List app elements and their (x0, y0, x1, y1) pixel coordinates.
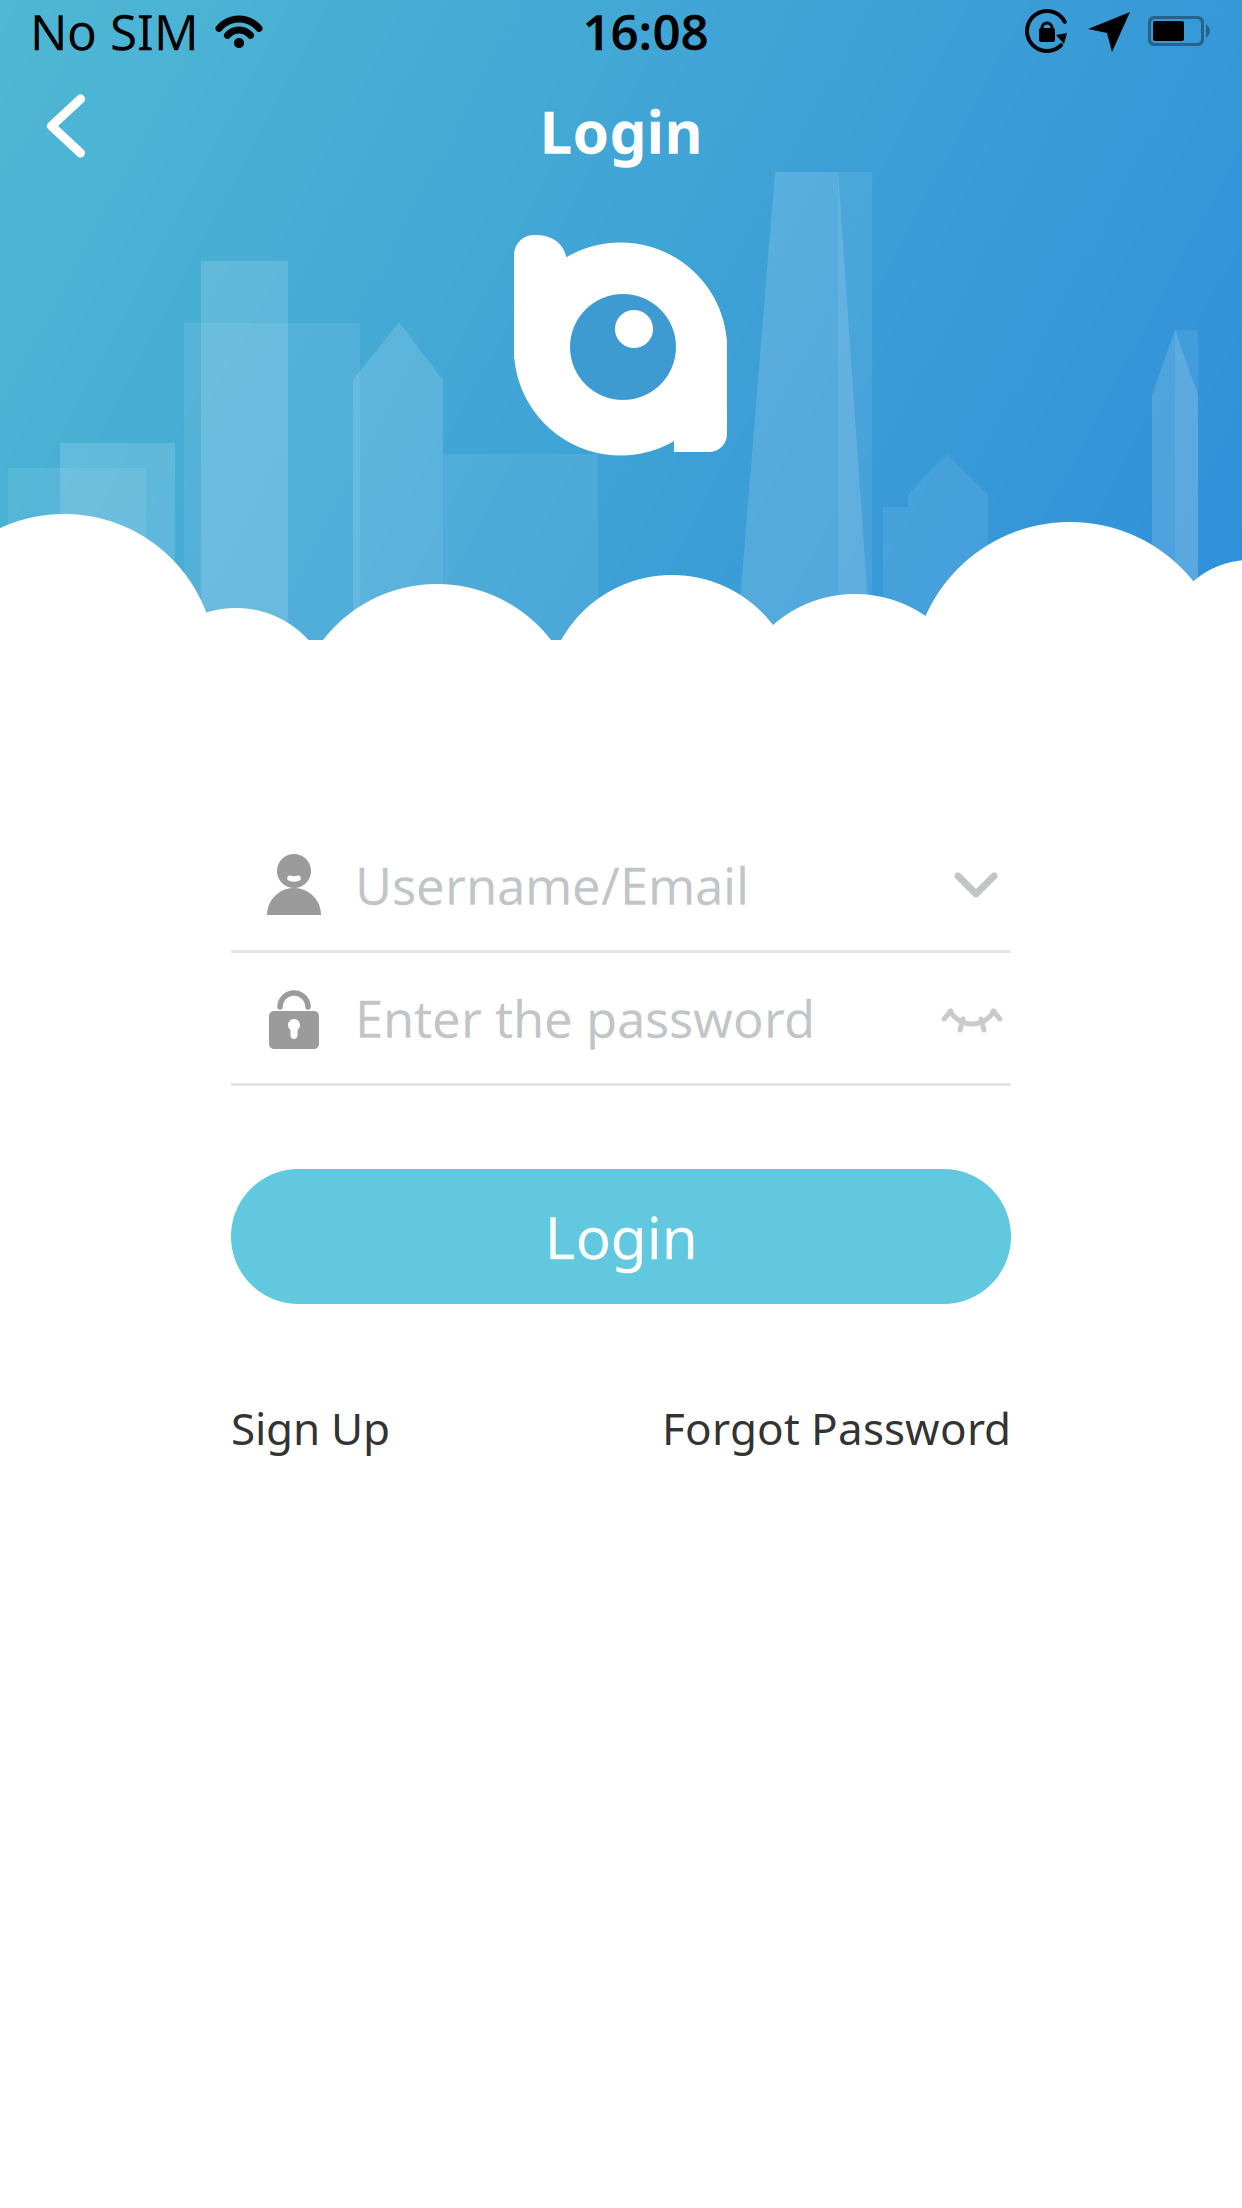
button[interactable]: Forgot Password (662, 1399, 1011, 1457)
button[interactable]: Back (0, 76, 132, 186)
button[interactable]: Username/Email (231, 820, 1011, 950)
staticText: Forgot Password (662, 1399, 1011, 1457)
staticText: No SIM (30, 0, 199, 64)
button[interactable]: Login (231, 1169, 1011, 1304)
staticText: Username/Email (355, 851, 749, 919)
staticText: 16:08 (582, 0, 708, 64)
staticText: Login (539, 92, 702, 170)
button[interactable]: Enter the password (231, 953, 1011, 1083)
staticText: Sign Up (231, 1399, 390, 1457)
staticText: Enter the password (355, 984, 815, 1052)
button[interactable]: Sign Up (231, 1399, 390, 1457)
staticText: Login (544, 1197, 697, 1275)
